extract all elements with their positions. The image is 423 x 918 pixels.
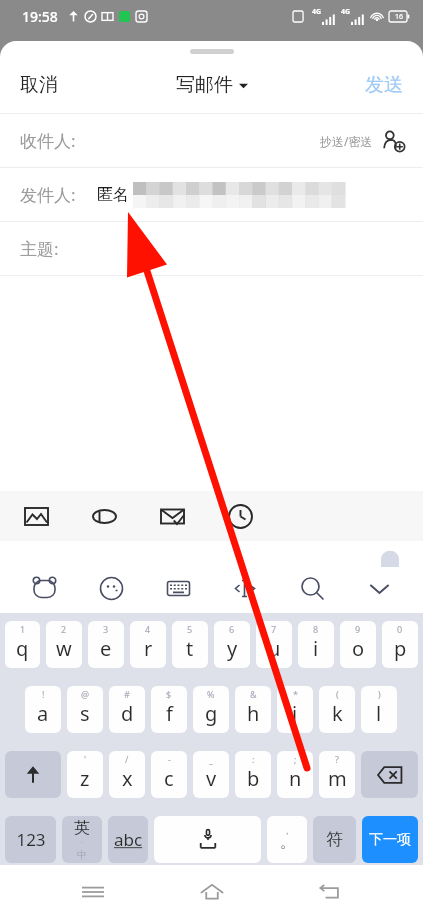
button[interactable]: / [109,751,145,798]
button[interactable]: _ [193,751,229,798]
staticText: q [16,635,29,662]
button[interactable]: ! [25,686,61,733]
button[interactable]: # [109,686,145,733]
button[interactable]: 写邮件 [170,67,254,103]
staticText: ， [282,824,292,837]
button[interactable]: % [193,686,229,733]
staticText: / [125,753,129,765]
button[interactable]: $ [151,686,187,733]
staticText: : [252,753,255,765]
button[interactable]: 1 [5,621,40,668]
staticText: 写邮件 [176,73,233,97]
staticText: @ [81,688,90,700]
staticText: f [166,700,173,727]
staticText: 4 [145,623,151,635]
staticText: 符 [326,829,343,850]
staticText: ( [336,688,339,700]
staticText: 4G [312,7,322,17]
staticText: 中 [77,848,87,861]
button[interactable]: ? [319,751,355,798]
staticText: 英 [74,818,90,838]
button[interactable]: 4 [130,621,166,668]
staticText: m [328,765,347,792]
staticText: & [250,688,257,700]
button[interactable]: Keyboard layout [155,565,201,611]
staticText: 9 [355,623,361,635]
button[interactable]: 英 [62,816,102,863]
staticText: b [247,765,260,792]
button[interactable]: 7 [256,621,292,668]
button[interactable]: 6 [214,621,250,668]
staticText: i [313,635,319,662]
staticText: ) [378,688,381,700]
other: Add contact [381,128,407,154]
button[interactable]: Backspace [361,751,418,798]
button[interactable]: ) [361,686,397,733]
button[interactable]: Home [187,867,237,917]
button[interactable]: ; [277,751,313,798]
staticText: d [121,700,134,727]
button[interactable]: 抄送/密送 [320,128,407,154]
staticText: r [144,635,153,662]
staticText: 发件人: [20,183,76,206]
button[interactable]: Recent apps [68,867,118,917]
staticText: $ [166,688,172,700]
button[interactable]: Emoji [88,565,134,611]
staticText: l [376,700,382,727]
staticText: 下一项 [369,831,411,849]
staticText: 取消 [20,73,58,97]
button[interactable]: 9 [340,621,376,668]
staticText: 19:58 [22,7,58,26]
button[interactable]: : [235,751,271,798]
button[interactable]: Baidu input [21,565,67,611]
staticText: j [292,700,298,727]
staticText: 123 [16,828,46,851]
button[interactable]: Signature [82,494,126,538]
button[interactable]: Schedule send [218,494,262,538]
button[interactable]: 下一项 [362,816,418,863]
button[interactable]: Search [289,565,335,611]
button[interactable]: Cursor move [222,565,268,611]
button[interactable]: 取消 [0,63,78,107]
staticText: · [81,838,83,848]
button[interactable]: ， [267,816,307,863]
staticText: 主题: [20,237,59,260]
button[interactable]: & [235,686,271,733]
staticText: v [206,765,217,792]
button[interactable]: Hide keyboard [356,565,402,611]
button[interactable]: abc [108,816,148,863]
button[interactable]: 2 [46,621,82,668]
staticText: x [122,765,133,792]
button[interactable]: Back [305,867,355,917]
button[interactable]: ( [319,686,355,733]
button[interactable]: - [151,751,187,798]
button[interactable]: 123 [5,816,56,863]
staticText: p [394,635,407,662]
button[interactable]: 3 [88,621,124,668]
staticText: c [164,765,174,792]
button[interactable]: @ [67,686,103,733]
staticText: ' [84,753,87,765]
button[interactable]: 0 [382,621,418,668]
staticText: 匿名 [97,185,129,205]
button[interactable]: Space [154,816,261,863]
button[interactable]: 5 [172,621,208,668]
button[interactable]: ' [67,751,103,798]
button[interactable]: Read receipt [150,494,194,538]
staticText: k [332,700,343,727]
button[interactable]: 8 [298,621,334,668]
staticText: t [186,635,194,662]
staticText: g [205,700,218,727]
button[interactable]: * [277,686,313,733]
button[interactable]: 符 [313,816,356,863]
staticText: w [56,635,72,662]
staticText: 4G [341,7,351,17]
staticText: 3 [103,623,109,635]
button[interactable]: Insert image [14,494,58,538]
staticText: o [352,635,365,662]
staticText: ? [335,753,339,765]
staticText: 7 [271,623,277,635]
button[interactable]: Shift [5,751,61,798]
button[interactable]: 发送 [345,63,423,107]
staticText: 8 [313,623,319,635]
